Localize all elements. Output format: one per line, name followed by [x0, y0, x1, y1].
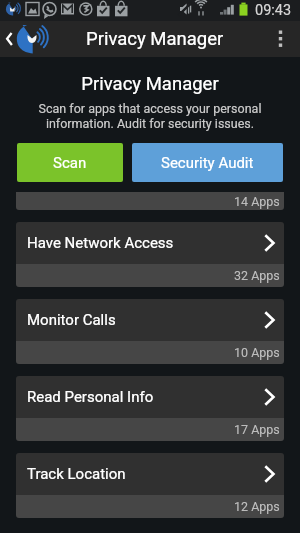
staticText: Read Personal Info	[27, 388, 154, 406]
staticText: 32 Apps	[234, 268, 280, 283]
button[interactable]: Track Location	[16, 453, 284, 518]
staticText: 14 Apps	[234, 194, 280, 209]
staticText: Privacy Manager	[86, 28, 224, 50]
button[interactable]: 14 Apps	[16, 192, 284, 210]
staticText: Scan	[53, 154, 87, 172]
button[interactable]: Navigate up	[0, 21, 56, 57]
staticText: Monitor Calls	[27, 311, 116, 329]
staticText: Privacy Manager	[0, 73, 300, 95]
staticText: 10 Apps	[234, 345, 280, 360]
button[interactable]: More options	[270, 21, 300, 57]
button[interactable]: Scan	[17, 143, 123, 182]
staticText: Scan for apps that access your personal …	[0, 101, 300, 131]
staticText: 09:43	[255, 2, 292, 19]
staticText: Track Location	[27, 465, 126, 483]
button[interactable]: Monitor Calls	[16, 299, 284, 364]
staticText: Security Audit	[161, 154, 254, 172]
button[interactable]: Have Network Access	[16, 222, 284, 287]
staticText: 12 Apps	[234, 499, 280, 514]
button[interactable]: Security Audit	[132, 143, 283, 182]
staticText: Have Network Access	[27, 234, 174, 252]
button[interactable]: Read Personal Info	[16, 376, 284, 441]
staticText: 17 Apps	[234, 422, 280, 437]
